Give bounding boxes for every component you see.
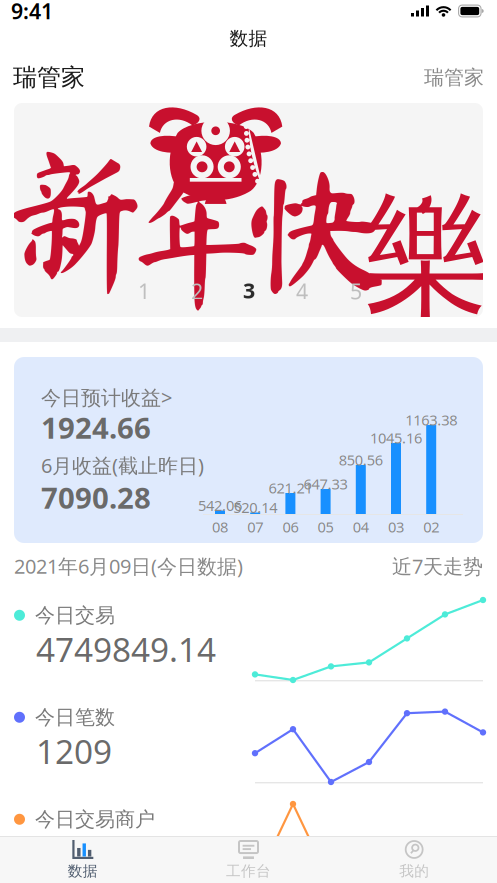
staticText: 542.06 <box>198 495 242 515</box>
staticText: 06 <box>282 517 298 536</box>
button[interactable]: 瑞管家 <box>424 65 484 90</box>
button[interactable]: 近7天走势 <box>392 553 483 579</box>
staticText: 7090.28 <box>41 478 151 517</box>
staticText: 近7天走势 <box>392 553 483 579</box>
staticText: 03 <box>388 517 404 536</box>
staticText: 樂 <box>364 176 492 337</box>
staticText: 07 <box>247 517 263 536</box>
staticText: 3 <box>243 276 255 304</box>
button[interactable]: 我的 <box>331 837 497 883</box>
button[interactable]: 今日交易 <box>0 589 497 691</box>
staticText: 621.21 <box>268 478 312 497</box>
button[interactable]: 今日笔数 <box>0 691 497 793</box>
button[interactable]: 新 <box>14 103 483 317</box>
button[interactable]: 工作台 <box>166 837 331 883</box>
staticText: 520.14 <box>233 497 277 517</box>
button[interactable]: 数据 <box>0 837 166 883</box>
staticText: 工作台 <box>226 862 271 880</box>
staticText: 08 <box>212 517 228 536</box>
staticText: 2021年6月09日(今日数据) <box>14 553 243 579</box>
staticText: 6月收益(截止昨日) <box>41 452 204 479</box>
staticText: 今日交易商户 <box>35 807 155 832</box>
staticText: 1045.16 <box>370 428 422 447</box>
staticText: 今日预计收益> <box>41 384 172 411</box>
button[interactable]: 今日交易商户 <box>0 793 497 883</box>
staticText: 今日交易 <box>35 603 115 628</box>
staticText: 4 <box>296 277 308 305</box>
button[interactable]: 今日预计收益> <box>41 384 172 411</box>
staticText: 快 <box>247 160 386 299</box>
staticText: 1209 <box>36 729 112 773</box>
staticText: 647.33 <box>304 474 348 493</box>
staticText: 瑞管家 <box>424 65 484 90</box>
staticText: 1924.66 <box>41 408 151 447</box>
staticText: 数据 <box>229 27 267 50</box>
staticText: 9:41 <box>11 0 53 25</box>
staticText: 我的 <box>399 862 429 880</box>
staticText: 4749849.14 <box>36 627 216 671</box>
staticText: 数据 <box>68 862 98 880</box>
staticText: 新 <box>0 143 151 295</box>
staticText: 5 <box>350 277 362 305</box>
staticText: 04 <box>353 517 369 536</box>
staticText: 今日笔数 <box>35 705 115 730</box>
staticText: 850.56 <box>339 450 383 469</box>
staticText: 瑞管家 <box>13 63 85 92</box>
staticText: 05 <box>318 517 334 536</box>
staticText: 328 <box>36 831 93 875</box>
staticText: 02 <box>423 517 439 536</box>
staticText: 1163.38 <box>405 410 457 429</box>
staticText: 2 <box>191 277 203 305</box>
staticText: 年 <box>128 173 267 312</box>
staticText: 1 <box>138 277 150 305</box>
